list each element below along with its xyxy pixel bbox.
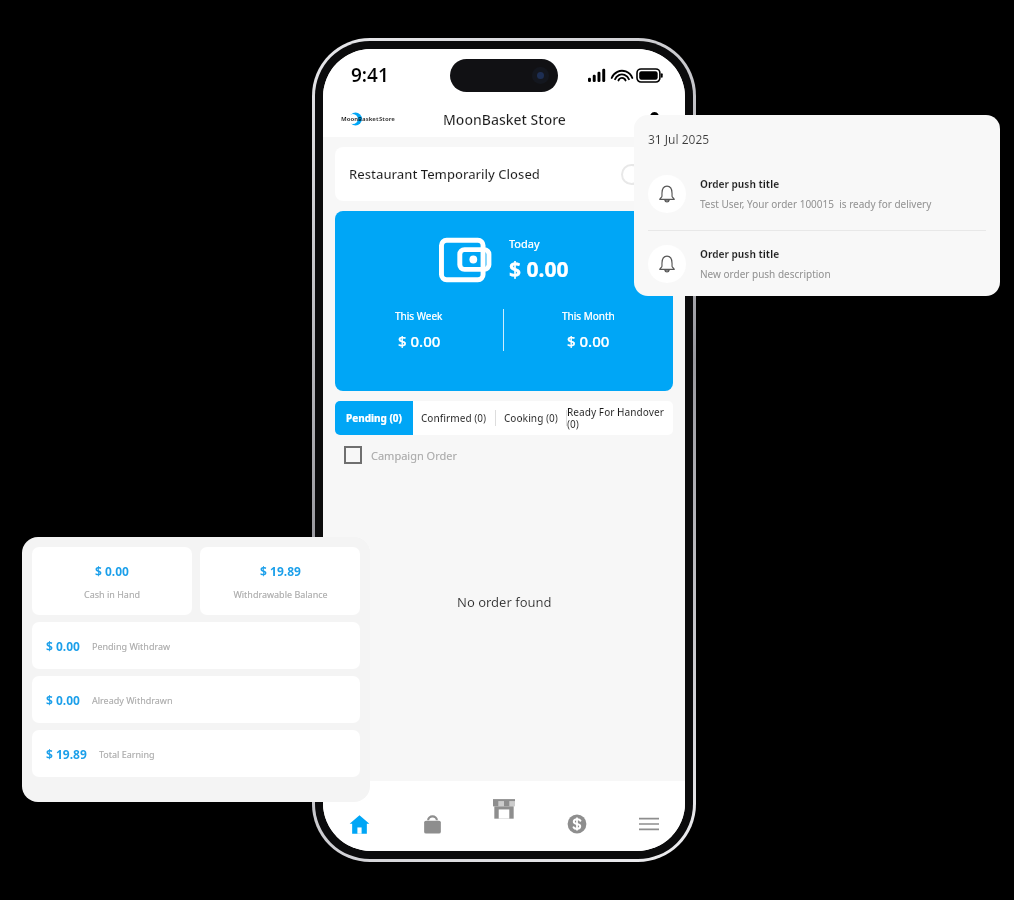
button[interactable]: Earnings bbox=[541, 797, 613, 851]
button[interactable]: Order push title bbox=[648, 231, 986, 296]
staticText: This Week bbox=[395, 309, 443, 323]
staticText: $ 19.89 bbox=[46, 746, 87, 762]
staticText: Pending Withdraw bbox=[92, 640, 171, 652]
staticText: Total Earning bbox=[99, 748, 155, 760]
button[interactable]: Store bbox=[476, 781, 532, 837]
button[interactable]: Ready For Handover (0) bbox=[567, 401, 673, 435]
button[interactable]: Pending (0) bbox=[335, 401, 413, 435]
button[interactable]: Restaurant Temporarily Closed bbox=[335, 147, 673, 201]
button[interactable]: $ 19.89 bbox=[200, 547, 360, 615]
button[interactable]: Home bbox=[323, 797, 396, 851]
button[interactable]: Cooking (0) bbox=[496, 401, 566, 435]
button[interactable]: Orders bbox=[396, 797, 469, 851]
staticText: MoonBasket Store bbox=[443, 110, 566, 129]
button[interactable]: $ 0.00 bbox=[32, 676, 360, 723]
staticText: Test User, Your order 100015 is ready fo… bbox=[700, 197, 932, 211]
staticText: New order push description bbox=[700, 267, 831, 281]
staticText: MoonBasket bbox=[341, 115, 379, 123]
staticText: $ 0.00 bbox=[567, 331, 610, 351]
staticText: $ 0.00 bbox=[46, 692, 80, 708]
button[interactable]: $ 0.00 bbox=[32, 547, 192, 615]
button[interactable]: Confirmed (0) bbox=[413, 401, 495, 435]
button[interactable]: Menu bbox=[613, 797, 685, 851]
staticText: This Month bbox=[562, 309, 615, 323]
button[interactable]: $ 0.00 bbox=[32, 622, 360, 669]
staticText: $ 0.00 bbox=[509, 255, 569, 284]
staticText: Today bbox=[509, 236, 540, 251]
staticText: Confirmed (0) bbox=[421, 411, 487, 425]
staticText: Cash in Hand bbox=[84, 588, 140, 600]
button[interactable]: $ 19.89 bbox=[32, 730, 360, 777]
staticText: Order push title bbox=[700, 247, 780, 261]
staticText: 9:41 bbox=[351, 62, 389, 88]
staticText: $ 0.00 bbox=[95, 563, 129, 579]
staticText: Withdrawable Balance bbox=[233, 588, 328, 600]
staticText: $ 19.89 bbox=[260, 563, 301, 579]
button[interactable]: Today bbox=[335, 211, 673, 391]
staticText: $ 0.00 bbox=[398, 331, 441, 351]
staticText: 31 Jul 2025 bbox=[648, 131, 710, 147]
button[interactable]: Campaign Order bbox=[345, 447, 458, 463]
staticText: Store bbox=[379, 115, 395, 123]
staticText: Campaign Order bbox=[371, 448, 458, 463]
staticText: Ready For Handover (0) bbox=[567, 405, 673, 431]
staticText: $ 0.00 bbox=[46, 638, 80, 654]
button[interactable]: Order push title bbox=[648, 157, 986, 230]
button[interactable]: Notifications bbox=[639, 104, 669, 134]
staticText: Cooking (0) bbox=[504, 411, 558, 425]
staticText: Already Withdrawn bbox=[92, 694, 173, 706]
staticText: Pending (0) bbox=[346, 411, 402, 425]
staticText: Restaurant Temporarily Closed bbox=[349, 165, 540, 183]
staticText: Order push title bbox=[700, 177, 780, 191]
staticText: No order found bbox=[457, 593, 552, 611]
